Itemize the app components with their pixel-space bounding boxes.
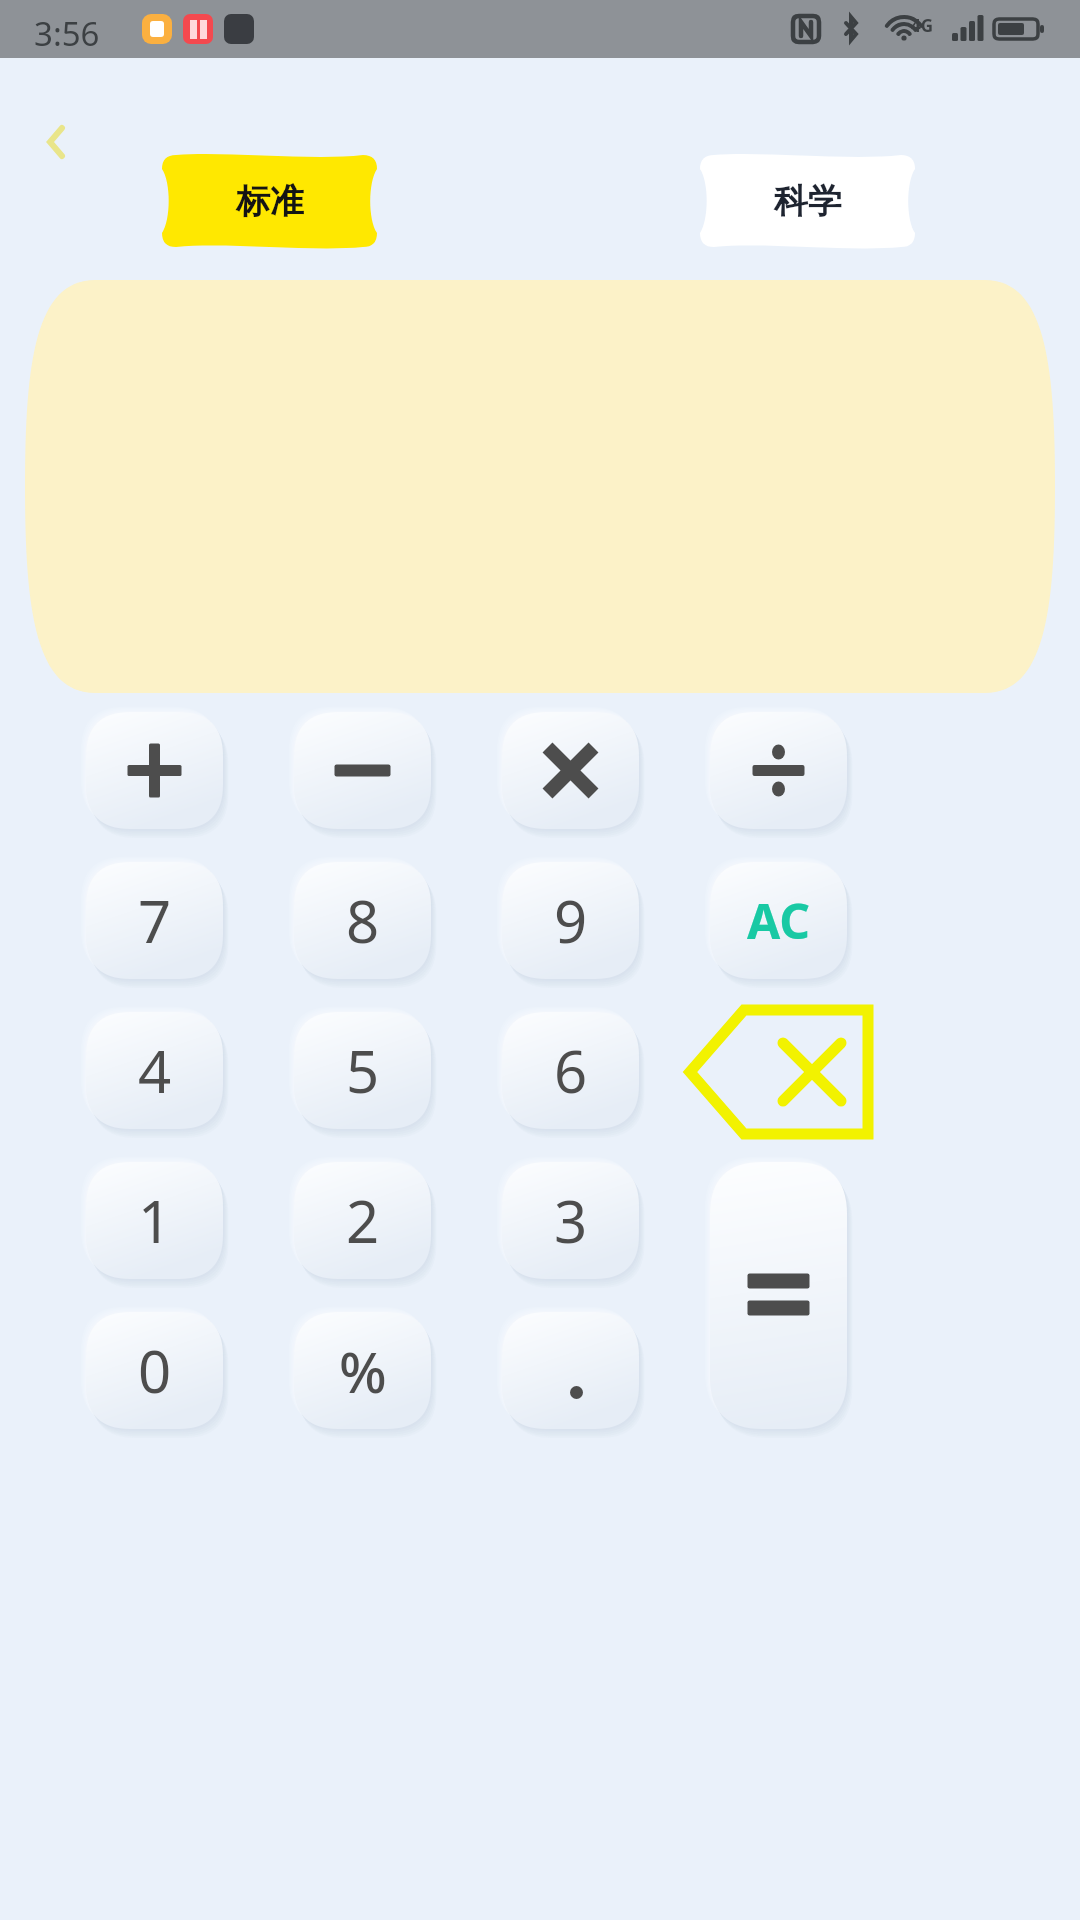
- button[interactable]: %: [290, 1308, 435, 1433]
- staticText: 2: [346, 1181, 380, 1260]
- button[interactable]: 9: [498, 858, 643, 983]
- staticText: 4G: [911, 14, 934, 37]
- button[interactable]: 6: [498, 1008, 643, 1133]
- button[interactable]: 3: [498, 1158, 643, 1283]
- button[interactable]: Plus: [82, 708, 227, 833]
- button[interactable]: Back: [28, 108, 88, 178]
- staticText: %: [339, 1333, 387, 1409]
- button[interactable]: 科学: [700, 155, 915, 247]
- button[interactable]: 8: [290, 858, 435, 983]
- staticText: AC: [747, 888, 811, 953]
- button[interactable]: 1: [82, 1158, 227, 1283]
- button[interactable]: 0: [82, 1308, 227, 1433]
- staticText: 科学: [774, 180, 842, 223]
- button[interactable]: Multiply: [498, 708, 643, 833]
- button[interactable]: AC: [706, 858, 851, 983]
- button[interactable]: Decimal point: [498, 1308, 643, 1433]
- button[interactable]: Backspace: [684, 1002, 874, 1142]
- button[interactable]: Equals: [706, 1158, 851, 1433]
- staticText: 3:56: [34, 11, 100, 56]
- staticText: 0: [138, 1331, 172, 1410]
- button[interactable]: 2: [290, 1158, 435, 1283]
- button[interactable]: 4: [82, 1008, 227, 1133]
- staticText: 标准: [236, 180, 304, 223]
- staticText: 6: [554, 1031, 588, 1110]
- staticText: 8: [346, 881, 380, 960]
- staticText: 4: [138, 1031, 172, 1110]
- button[interactable]: Minus: [290, 708, 435, 833]
- button[interactable]: 标准: [162, 155, 377, 247]
- button[interactable]: Divide: [706, 708, 851, 833]
- staticText: 3: [554, 1181, 588, 1260]
- staticText: 1: [138, 1181, 172, 1260]
- staticText: 9: [554, 881, 588, 960]
- staticText: 5: [346, 1031, 380, 1110]
- button[interactable]: 5: [290, 1008, 435, 1133]
- staticText: 7: [138, 881, 172, 960]
- button[interactable]: 7: [82, 858, 227, 983]
